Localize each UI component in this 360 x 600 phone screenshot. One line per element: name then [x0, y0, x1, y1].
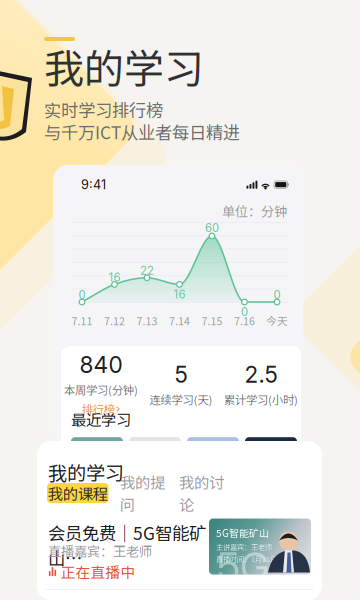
staticText: 我的提问	[120, 471, 165, 515]
staticText: 7.11	[71, 313, 92, 328]
staticText: 840	[79, 351, 122, 378]
staticText: 会员免费｜5G智能矿山…	[48, 520, 206, 570]
staticText: 7.15	[201, 313, 222, 328]
button[interactable]: 我的课程	[47, 483, 108, 503]
staticText: 22	[140, 264, 154, 277]
staticText: 5G	[217, 542, 269, 591]
staticText: 正在直播中	[60, 561, 135, 582]
button[interactable]: 会员免费｜5G智能矿山…	[37, 515, 322, 600]
staticText: 单位：分钟	[222, 201, 287, 220]
staticText: 7.14	[169, 313, 190, 328]
staticText: 7.13	[136, 313, 157, 328]
staticText: 9:41	[81, 177, 106, 192]
staticText: 60	[205, 221, 219, 235]
staticText: 16	[108, 270, 120, 284]
button[interactable]: 我的提问	[117, 483, 167, 503]
staticText: 2.5	[244, 361, 277, 388]
button[interactable]: 我的讨论	[176, 483, 226, 503]
staticText: 7.16	[234, 313, 255, 328]
staticText: 5G智能矿山	[216, 525, 269, 540]
staticText: 累计学习(小时)	[224, 391, 298, 407]
staticText: 直播嘉宾：王老师	[48, 541, 152, 560]
staticText: 排行榜	[82, 401, 115, 417]
staticText: 本周学习(分钟)	[64, 381, 138, 398]
staticText: 我的讨论	[179, 471, 224, 515]
staticText: 我的学习	[44, 37, 204, 95]
staticText: 7.12	[104, 313, 125, 328]
staticText: 最近学习	[71, 408, 131, 430]
staticText: 主讲嘉宾：王老师	[216, 541, 272, 552]
staticText: 我的课程	[48, 482, 108, 504]
staticText: 0	[241, 305, 248, 319]
staticText: 5	[174, 361, 187, 388]
staticText: 16	[173, 287, 185, 301]
staticText: 0	[78, 288, 85, 302]
staticText: 直播时间：1月21日 20:00	[216, 554, 297, 564]
staticText: 与千万ICT从业者每日精进	[44, 119, 240, 144]
staticText: 我的学习	[48, 458, 124, 486]
staticText: 0	[273, 288, 280, 302]
staticText: 今天	[266, 313, 288, 328]
staticText: 连续学习(天)	[149, 391, 212, 407]
staticText: 实时学习排行榜	[44, 97, 163, 122]
